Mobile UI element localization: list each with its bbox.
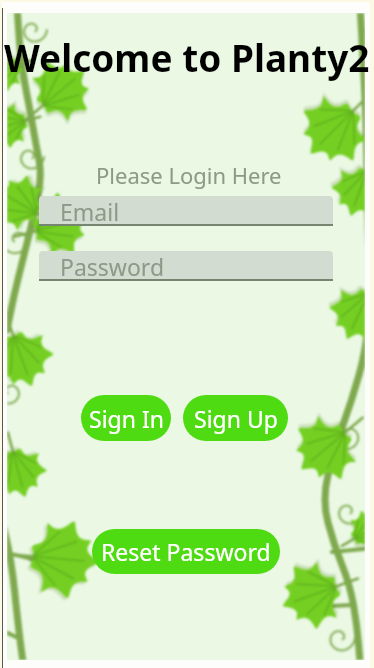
staticText: Email — [60, 196, 120, 224]
staticText: Sign In — [89, 403, 164, 434]
button[interactable]: Sign Up — [183, 395, 288, 441]
button[interactable]: Sign In — [81, 395, 171, 441]
button[interactable]: Reset Password — [92, 529, 280, 574]
staticText: Sign Up — [194, 403, 278, 434]
staticText: Reset Password — [101, 536, 271, 567]
staticText: Please Login Here — [96, 160, 282, 190]
staticText: Password — [60, 251, 165, 279]
button[interactable]: Password — [39, 251, 333, 281]
staticText: Welcome to Planty2 — [4, 32, 370, 82]
button[interactable]: Email — [39, 196, 333, 226]
